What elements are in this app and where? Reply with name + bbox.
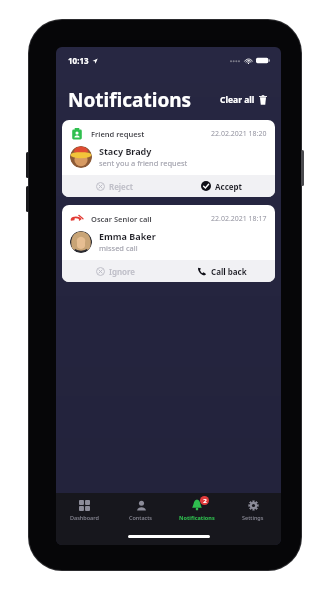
button[interactable]: Contacts (113, 493, 169, 527)
staticText: Emma Baker (99, 230, 156, 242)
staticText: Reject (109, 181, 134, 192)
staticText: Call back (211, 266, 247, 277)
staticText: sent you a friend request (99, 158, 188, 168)
button[interactable]: Oscar Senior call (62, 205, 275, 282)
staticText: Settings (242, 514, 264, 521)
staticText: Notifications (68, 87, 192, 113)
staticText: Ignore (109, 266, 135, 277)
staticText: Dashboard (70, 514, 99, 521)
button[interactable]: Accept (168, 175, 275, 197)
button[interactable]: Reject (62, 175, 168, 197)
staticText: Contacts (129, 514, 153, 521)
button[interactable]: Ignore (62, 260, 168, 282)
button[interactable]: Clear all (218, 91, 269, 109)
staticText: 22.02.2021 18:17 (211, 214, 267, 224)
staticText: Oscar Senior call (91, 214, 152, 224)
button[interactable]: Dashboard (56, 493, 113, 527)
button[interactable]: Friend request (62, 120, 275, 197)
button[interactable]: Notifications (169, 493, 225, 527)
staticText: Stacy Brady (99, 145, 152, 157)
staticText: missed call (99, 243, 138, 253)
staticText: Notifications (179, 514, 215, 521)
button[interactable]: Settings (225, 493, 281, 527)
staticText: 22.02.2021 18:20 (211, 129, 267, 139)
staticText: Friend request (91, 129, 145, 139)
staticText: 10:13 (68, 55, 89, 66)
button[interactable]: Call back (168, 260, 275, 282)
staticText: Accept (215, 181, 243, 192)
staticText: 2 (203, 497, 207, 505)
staticText: Clear all (220, 94, 255, 106)
